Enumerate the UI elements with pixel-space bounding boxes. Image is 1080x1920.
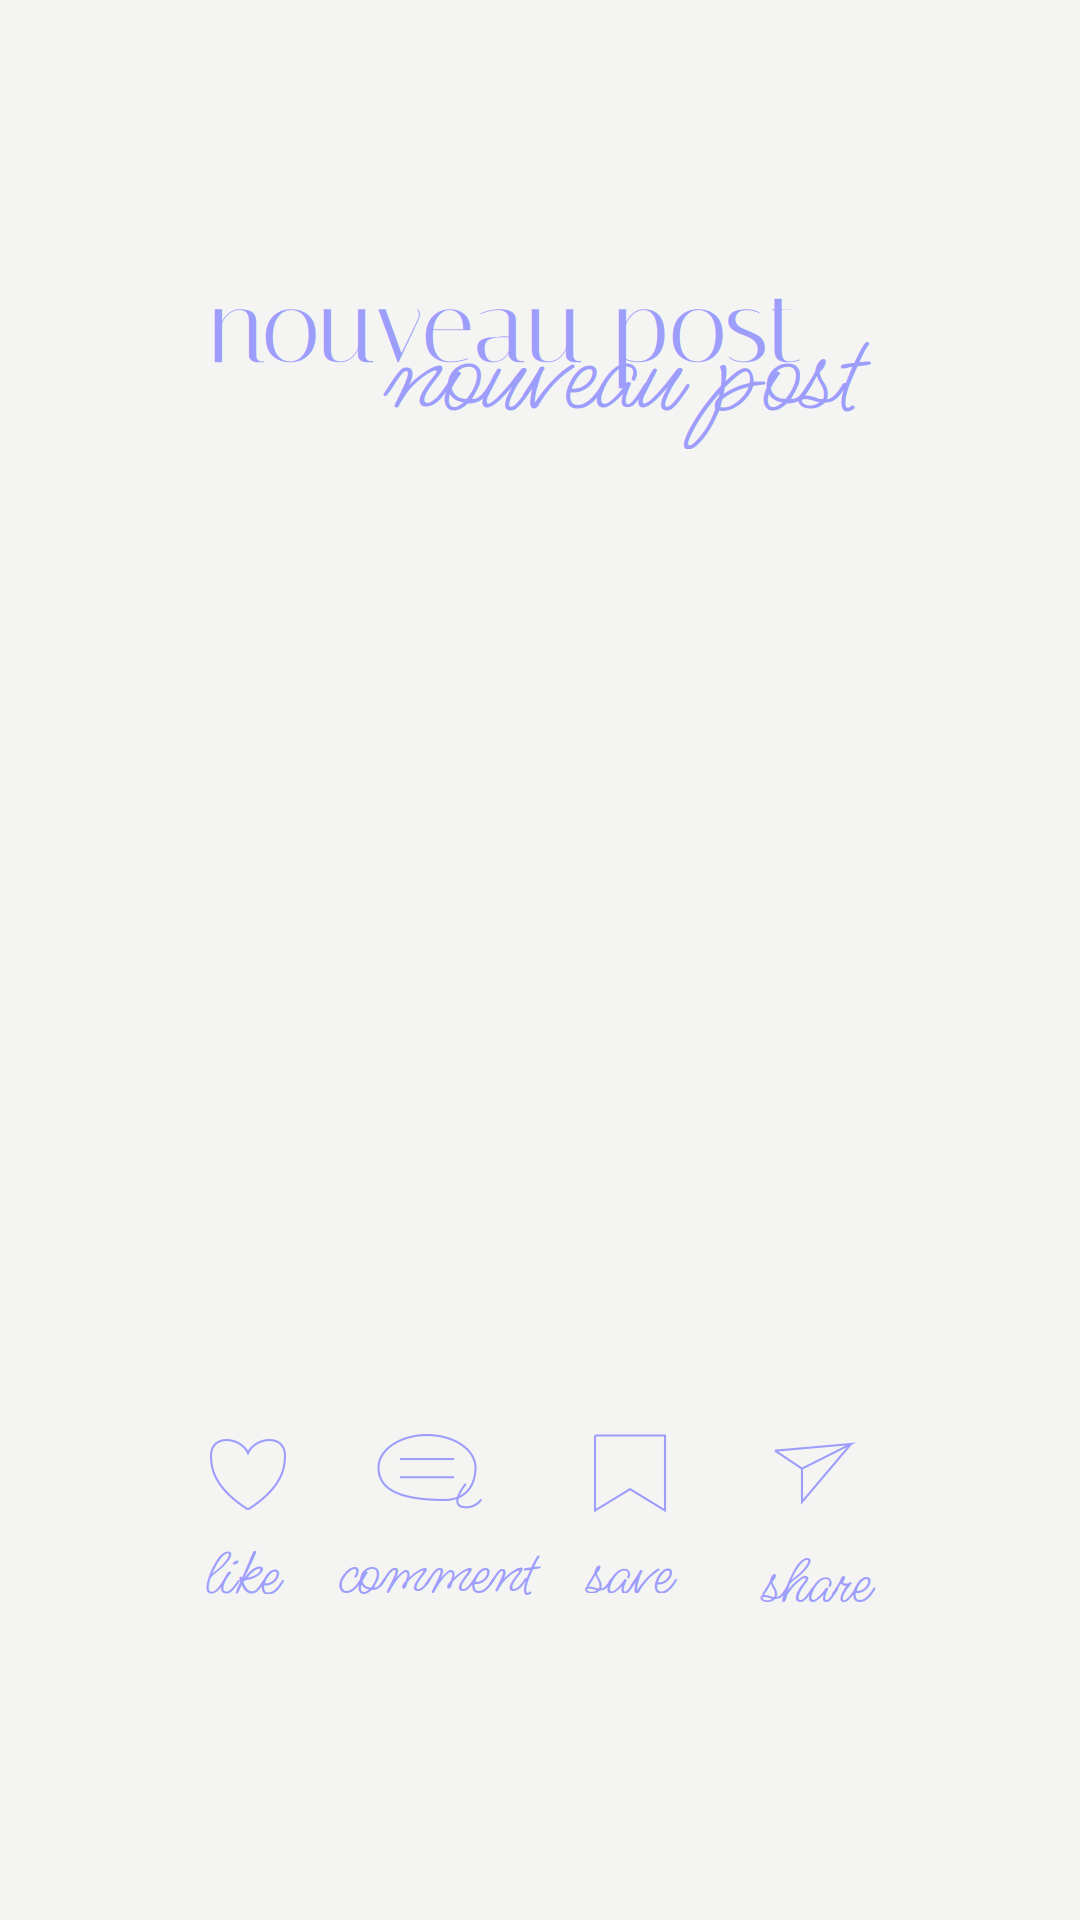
staticText: nouveau post xyxy=(210,266,803,388)
staticText: like xyxy=(204,1531,279,1622)
staticText: nouveau post xyxy=(385,297,863,459)
button[interactable]: Like xyxy=(154,1436,330,1622)
staticText: comment xyxy=(338,1529,536,1621)
staticText: share xyxy=(763,1538,871,1630)
button[interactable]: Save xyxy=(542,1435,718,1621)
button[interactable]: Share xyxy=(729,1444,905,1630)
staticText: save xyxy=(587,1530,672,1621)
button[interactable]: Comment xyxy=(349,1435,525,1621)
